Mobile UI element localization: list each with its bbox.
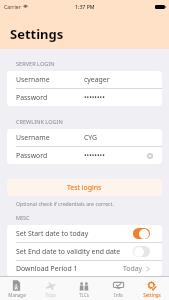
staticText: •••••••• — [84, 93, 105, 102]
button[interactable]: Password — [7, 147, 162, 164]
button[interactable]: Set End date to validity end date — [7, 243, 162, 260]
staticText: Settings — [10, 25, 64, 43]
staticText: Optional check if credentials are correc… — [16, 200, 114, 207]
staticText: CYG — [84, 133, 98, 142]
staticText: Settings — [143, 292, 161, 298]
staticText: Carrier — [4, 3, 21, 10]
other: Clear text — [147, 153, 153, 159]
staticText: •••••••• — [84, 151, 105, 160]
staticText: 1:37 PM — [75, 3, 95, 10]
staticText: cyeager — [84, 75, 110, 84]
staticText: Username — [16, 75, 50, 84]
staticText: MISC — [16, 214, 30, 222]
staticText: Manage — [8, 292, 26, 298]
button[interactable]: Trips — [33, 277, 67, 300]
button[interactable]: Set Start date to today — [7, 225, 162, 242]
button[interactable]: Settings — [135, 277, 169, 300]
staticText: SERVER LOGIN — [16, 60, 55, 68]
staticText: Today — [123, 264, 143, 273]
staticText: TLCs — [79, 292, 89, 298]
button[interactable]: Download Period 1 — [7, 261, 162, 276]
staticText: Set End date to validity end date — [16, 247, 121, 256]
button[interactable]: Test logins — [7, 179, 162, 196]
button[interactable]: Username — [7, 129, 162, 146]
staticText: CREWLINK LOGIN — [16, 118, 63, 126]
staticText: Password — [16, 93, 48, 102]
staticText: Trips — [45, 292, 56, 298]
staticText: Download Period 1 — [16, 264, 78, 273]
staticText: Test logins — [67, 183, 102, 192]
button[interactable]: Manage — [0, 277, 33, 300]
button[interactable]: Username — [7, 71, 162, 88]
staticText: Set Start date to today — [16, 229, 89, 238]
button[interactable]: Info — [101, 277, 135, 300]
button[interactable]: Password — [7, 89, 162, 106]
button[interactable]: TLCs — [67, 277, 101, 300]
staticText: Password — [16, 151, 48, 160]
staticText: Info — [114, 292, 123, 298]
staticText: Username — [16, 133, 50, 142]
